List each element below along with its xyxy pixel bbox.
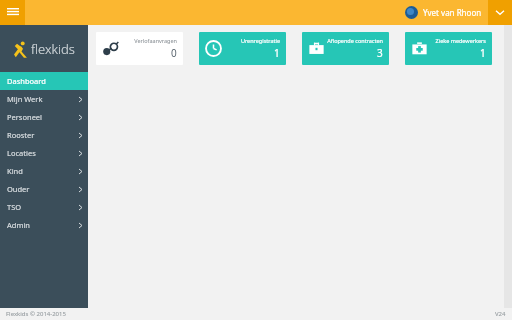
staticText: Verlofaanvragen — [134, 37, 177, 44]
button[interactable]: Zieke medewerkers — [405, 32, 492, 65]
button[interactable]: Yvet van Rhoon — [399, 0, 488, 25]
button[interactable]: Kind — [0, 162, 88, 180]
button[interactable]: TSO — [0, 198, 88, 216]
button[interactable]: Rooster — [0, 126, 88, 144]
staticText: Dashboard — [7, 76, 46, 86]
button[interactable]: Dashboard — [0, 72, 88, 90]
button[interactable]: Aflopende contracten — [302, 32, 389, 65]
button[interactable]: Mijn Werk — [0, 90, 88, 108]
button[interactable]: Locaties — [0, 144, 88, 162]
staticText: Mijn Werk — [7, 94, 43, 104]
button[interactable]: Verlofaanvragen — [96, 32, 183, 65]
staticText: flexkids — [31, 40, 75, 58]
staticText: Flexkids © 2014-2015 — [6, 310, 66, 318]
button[interactable]: flexkids — [0, 25, 88, 72]
button[interactable]: Admin — [0, 216, 88, 234]
staticText: Zieke medewerkers — [435, 37, 486, 44]
staticText: Ouder — [7, 184, 30, 194]
staticText: Admin — [7, 220, 30, 230]
staticText: 0 — [171, 46, 177, 60]
button[interactable]: Personeel — [0, 108, 88, 126]
staticText: TSO — [7, 202, 22, 212]
staticText: Locaties — [7, 148, 36, 158]
staticText: Kind — [7, 166, 23, 176]
staticText: Aflopende contracten — [327, 37, 383, 44]
staticText: 3 — [377, 46, 383, 60]
staticText: Personeel — [7, 112, 43, 122]
staticText: 1 — [274, 46, 280, 60]
button[interactable]: Urenregistratie — [199, 32, 286, 65]
staticText: 1 — [480, 46, 486, 60]
button[interactable]: Ouder — [0, 180, 88, 198]
staticText: Yvet van Rhoon — [423, 7, 482, 18]
staticText: V24 — [495, 310, 506, 318]
staticText: Urenregistratie — [240, 37, 280, 44]
staticText: Rooster — [7, 130, 35, 140]
button[interactable]: Menu — [0, 0, 25, 25]
button[interactable]: Account menu — [488, 0, 512, 25]
